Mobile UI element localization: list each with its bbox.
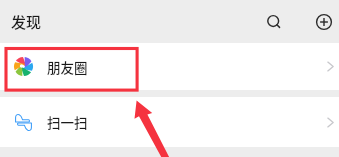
staticText: 朋友圈 xyxy=(47,57,88,77)
button[interactable]: 扫一扫 xyxy=(0,97,339,147)
button[interactable]: Add xyxy=(304,0,339,43)
staticText: 发现 xyxy=(11,11,42,33)
button[interactable]: 朋友圈 xyxy=(0,43,339,90)
button[interactable]: Search xyxy=(254,0,294,43)
staticText: 扫一扫 xyxy=(47,112,88,132)
